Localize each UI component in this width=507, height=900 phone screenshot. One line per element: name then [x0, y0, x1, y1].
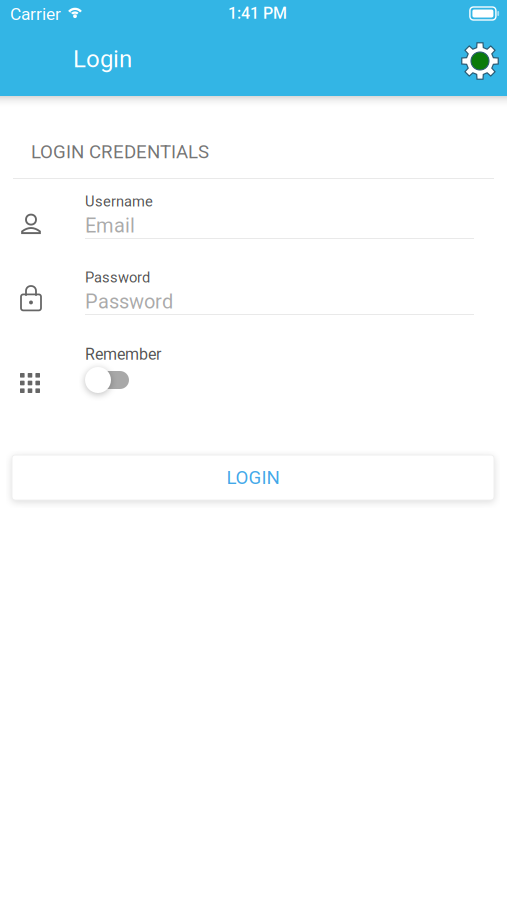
staticText: 1:41 PM: [228, 4, 287, 23]
staticText: Password: [85, 269, 150, 286]
staticText: Email: [85, 214, 135, 237]
staticText: Password: [85, 290, 173, 313]
staticText: Login: [73, 45, 132, 73]
staticText: Remember: [85, 345, 161, 364]
staticText: Carrier: [10, 4, 61, 24]
button[interactable]: Remember: [85, 366, 130, 394]
button[interactable]: LOGIN: [12, 455, 494, 500]
button[interactable]: Settings: [461, 42, 499, 80]
staticText: Username: [85, 193, 153, 210]
staticText: LOGIN CREDENTIALS: [31, 141, 209, 163]
staticText: LOGIN: [226, 467, 279, 488]
